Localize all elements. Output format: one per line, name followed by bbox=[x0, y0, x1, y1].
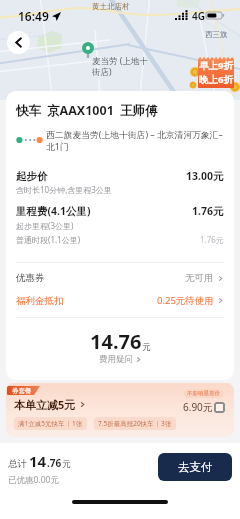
staticText: 元 bbox=[62, 459, 71, 470]
staticText: 快车 bbox=[16, 103, 41, 119]
staticText: 里程费(4.1公里) bbox=[16, 204, 91, 218]
staticText: 6.90元 bbox=[183, 400, 213, 414]
staticText: 1.76元 bbox=[192, 204, 224, 218]
button[interactable]: 优惠券 bbox=[6, 272, 234, 284]
button[interactable]: Select coupon package bbox=[214, 402, 225, 413]
staticText: 京AAX1001 bbox=[47, 102, 114, 119]
staticText: 13.00元 bbox=[186, 169, 224, 183]
staticText: 王师傅 bbox=[120, 103, 158, 119]
staticText: 7.5折最高抵20快车 bbox=[98, 419, 154, 428]
staticText: 黄土北店村 bbox=[92, 2, 130, 11]
button[interactable]: 福利金抵扣 bbox=[6, 294, 234, 307]
staticText: 晚上6折 bbox=[199, 73, 233, 86]
staticText: 早上9折 bbox=[199, 59, 233, 72]
staticText: 14.76 bbox=[90, 328, 142, 355]
staticText: 费用疑问 bbox=[99, 354, 133, 365]
staticText: 1.76元 bbox=[200, 234, 224, 245]
staticText: 含时长10分钟,含里程3公里 bbox=[16, 184, 112, 195]
staticText: .76 bbox=[47, 456, 62, 470]
staticText: 1张 bbox=[72, 419, 83, 428]
staticText: 14 bbox=[29, 451, 47, 471]
staticText: 起步价 bbox=[16, 170, 48, 183]
staticText: 西三旗 bbox=[205, 30, 228, 39]
staticText: 不影响退差价 bbox=[187, 390, 220, 397]
button[interactable]: 去支付 bbox=[158, 453, 232, 481]
button[interactable]: 券套餐 bbox=[6, 383, 234, 437]
staticText: 总计 bbox=[8, 458, 27, 470]
staticText: 本单立减5元 bbox=[14, 397, 76, 412]
staticText: 券套餐 bbox=[12, 387, 32, 395]
button[interactable]: Back bbox=[7, 31, 30, 54]
staticText: 3张 bbox=[161, 419, 172, 428]
button[interactable]: 费用疑问 bbox=[6, 354, 234, 365]
staticText: 福利金抵扣 bbox=[16, 295, 64, 307]
staticText: 普通时段(1.1公里) bbox=[16, 234, 81, 245]
button[interactable]: Discount promotion bbox=[190, 55, 240, 95]
staticText: 起步里程(3公里) bbox=[16, 220, 74, 231]
staticText: 元 bbox=[142, 342, 151, 353]
staticText: 满1立减5元快车 bbox=[18, 419, 65, 428]
staticText: 16:49 bbox=[18, 8, 49, 24]
staticText: 已优惠0.00元 bbox=[8, 474, 59, 486]
staticText: 优惠券 bbox=[16, 272, 45, 284]
staticText: 西二旗麦当劳(上地十街店) – 北京清河万象汇–北1门 bbox=[46, 129, 224, 151]
staticText: 麦当劳 (上地十 街店) bbox=[92, 55, 148, 78]
staticText: 无可用 bbox=[185, 272, 214, 284]
staticText: 0.25元待使用 bbox=[157, 294, 214, 307]
staticText: 去支付 bbox=[178, 460, 213, 474]
staticText: 4G bbox=[192, 9, 205, 23]
